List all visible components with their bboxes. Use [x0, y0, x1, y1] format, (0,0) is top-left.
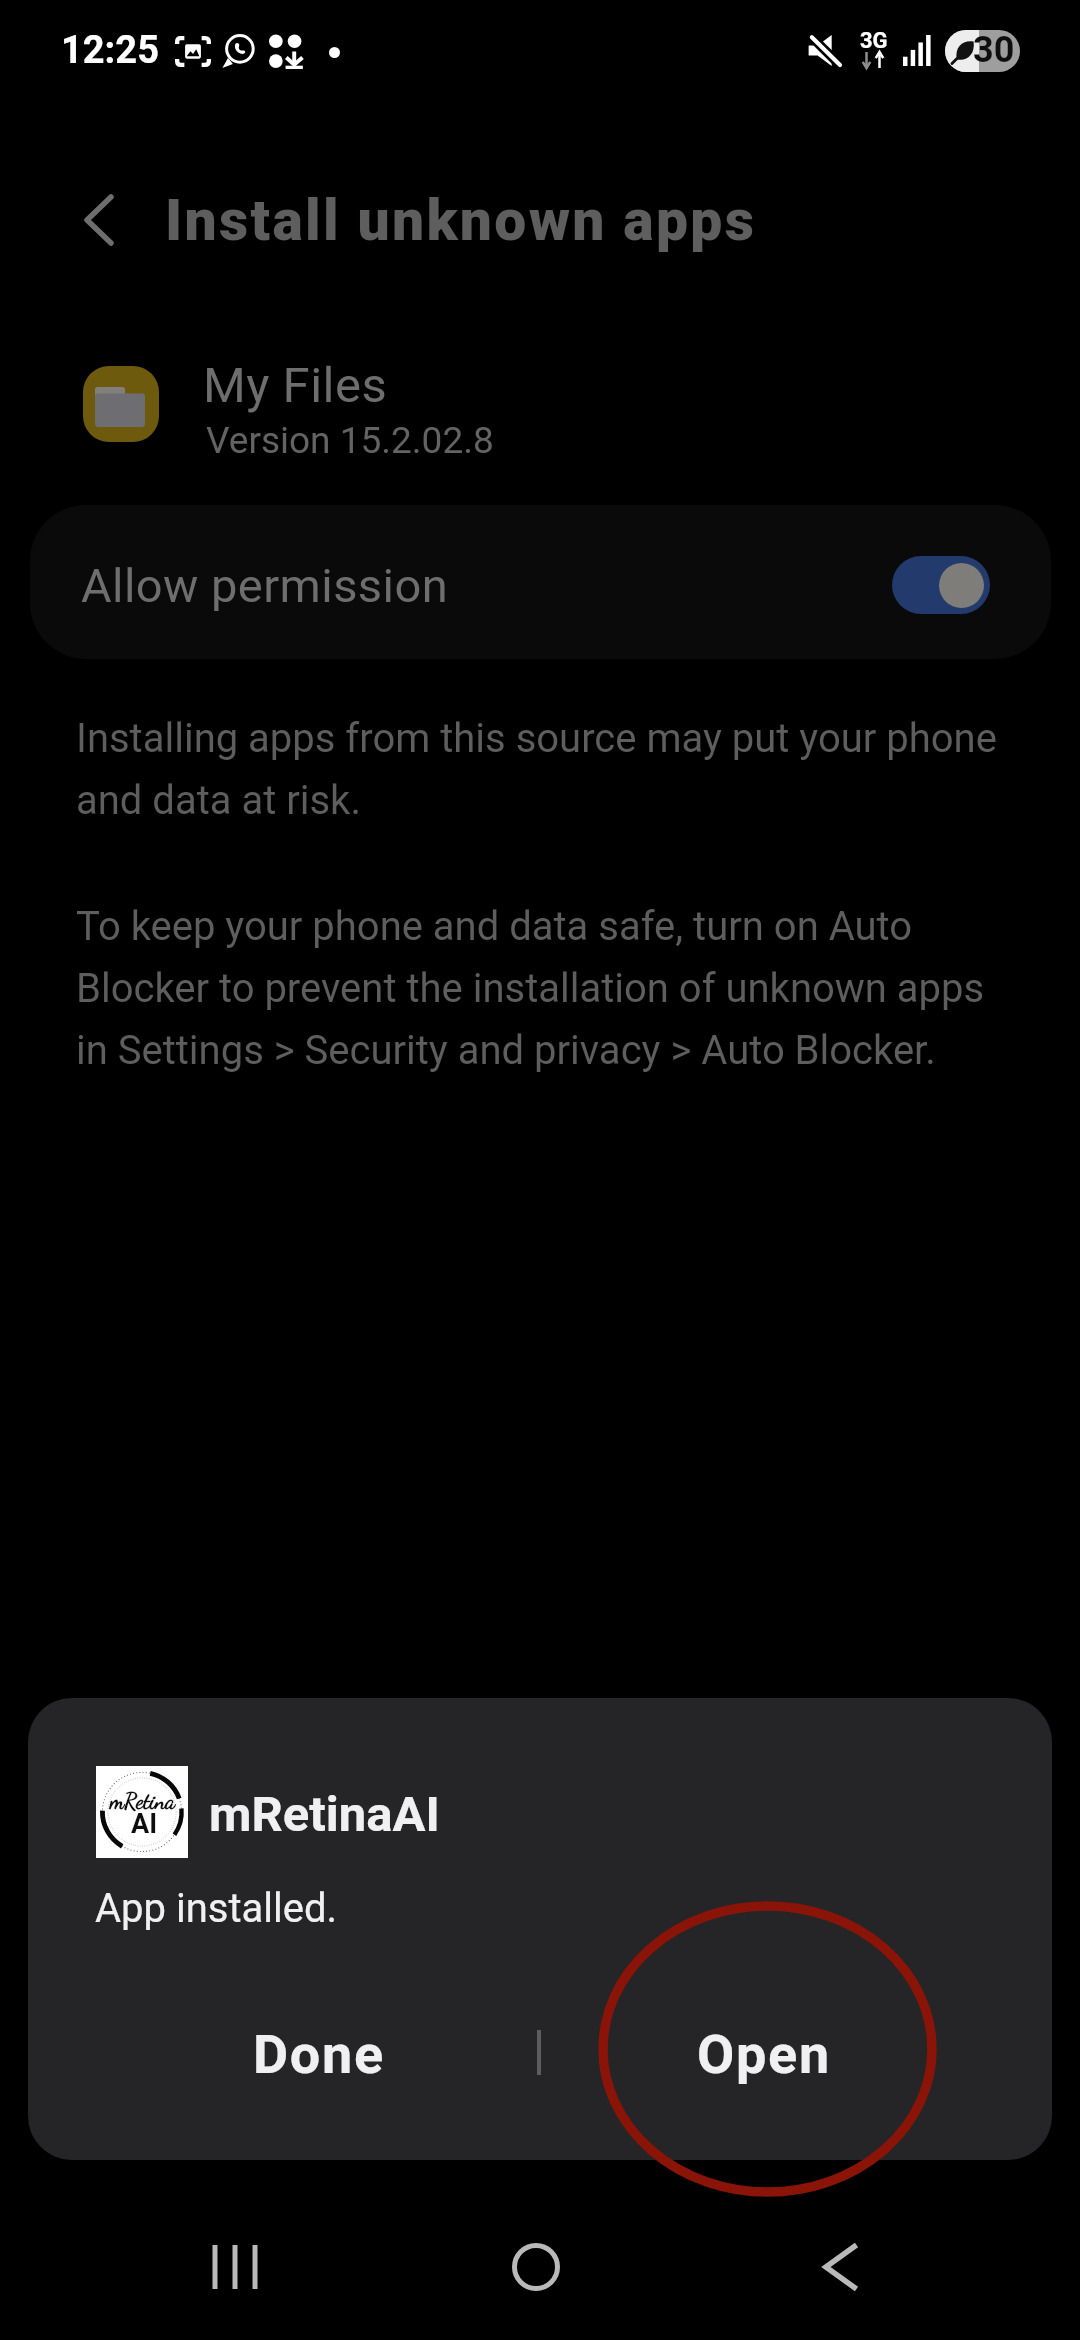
- button[interactable]: Back: [781, 2207, 901, 2327]
- button[interactable]: Allow permission: [30, 505, 1051, 659]
- staticText: Installing apps from this source may put…: [76, 715, 1021, 824]
- button[interactable]: Open: [548, 1993, 980, 2115]
- button[interactable]: Navigate up: [51, 172, 147, 268]
- staticText: Done: [253, 2023, 385, 2086]
- button[interactable]: Home: [476, 2207, 596, 2327]
- staticText: App installed.: [95, 1885, 338, 1932]
- staticText: Version 15.2.02.8: [206, 419, 494, 462]
- staticText: 12:25: [61, 28, 159, 73]
- staticText: AI: [131, 1808, 158, 1840]
- staticText: Open: [697, 2023, 831, 2086]
- staticText: 3G: [860, 28, 888, 54]
- staticText: 30: [973, 30, 1015, 71]
- button[interactable]: Recents: [175, 2207, 295, 2327]
- staticText: My Files: [203, 357, 388, 414]
- staticText: Allow permission: [81, 558, 449, 613]
- staticText: To keep your phone and data safe, turn o…: [76, 903, 1021, 1074]
- staticText: Install unknown apps: [165, 187, 757, 254]
- staticText: mRetina: [110, 1788, 175, 1814]
- button[interactable]: Done: [103, 1993, 535, 2115]
- staticText: mRetinaAI: [209, 1786, 440, 1843]
